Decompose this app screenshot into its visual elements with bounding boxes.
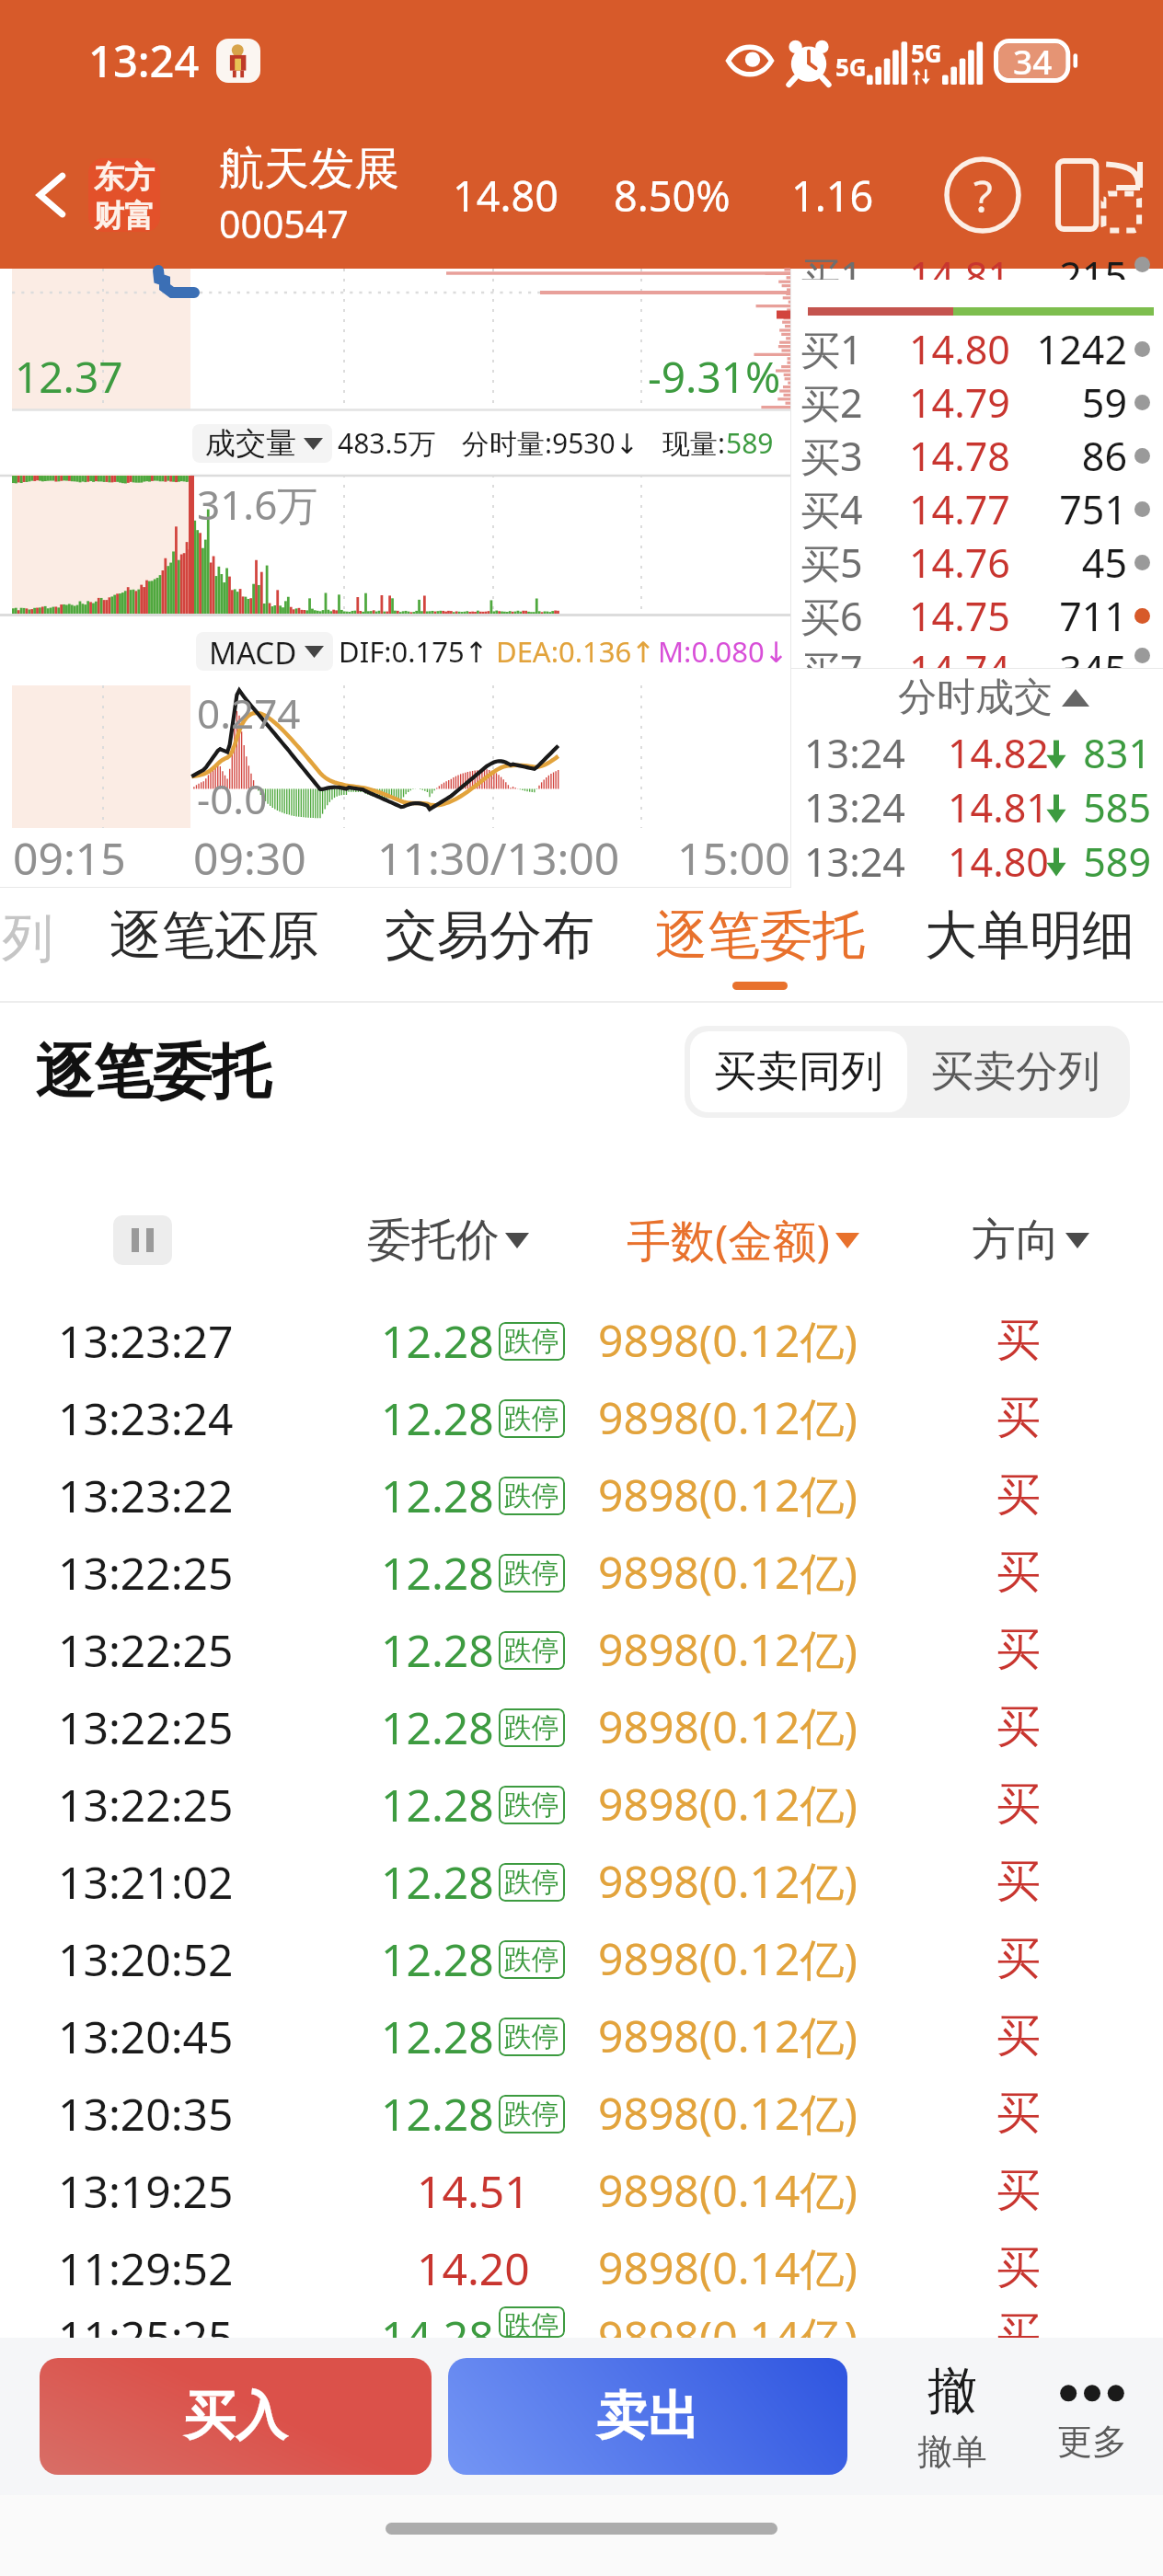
button[interactable]: 11:25:25 xyxy=(0,2306,1163,2338)
staticText: 14.78 xyxy=(909,429,1010,482)
button[interactable]: 买卖同列 xyxy=(690,1031,907,1112)
staticText: 45 xyxy=(1081,535,1127,589)
button[interactable]: 13:24 xyxy=(791,834,1163,888)
staticText: 11:25:25 xyxy=(58,2306,234,2338)
button[interactable]: 交易分布 xyxy=(385,888,594,1003)
staticText: 14.51 xyxy=(417,2161,530,2221)
button[interactable]: 手数(金额) xyxy=(627,1210,859,1271)
staticText: 5G xyxy=(911,37,942,69)
staticText: DIF:0.175↑ xyxy=(339,632,489,671)
button[interactable]: 分时成交 xyxy=(791,669,1163,726)
button[interactable]: 13:22:25 xyxy=(0,1688,1163,1765)
staticText: 9898(0.12亿) xyxy=(598,1465,858,1525)
button[interactable]: Back xyxy=(0,121,101,269)
staticText: 345 xyxy=(1059,642,1127,668)
button[interactable]: 逐笔还原 xyxy=(109,888,319,1003)
staticText: 买 xyxy=(996,2306,1041,2338)
staticText: 委托价 xyxy=(367,1213,500,1268)
staticText: 分时量:9530↓ xyxy=(462,424,639,462)
staticText: 9898(0.12亿) xyxy=(598,1387,858,1448)
staticText: 14.74 xyxy=(909,642,1010,668)
staticText: 14.77 xyxy=(909,482,1010,535)
staticText: 13:21:02 xyxy=(58,1852,234,1912)
staticText: 12.37 xyxy=(15,348,123,406)
staticText: 13:22:25 xyxy=(58,1620,234,1680)
staticText: 买6 xyxy=(800,589,863,642)
button[interactable]: 成交量 xyxy=(192,424,332,463)
staticText: 12.28 xyxy=(381,1620,494,1680)
staticText: 9898(0.12亿) xyxy=(598,1851,858,1912)
button[interactable]: 13:22:25 xyxy=(0,1611,1163,1688)
staticText: 711 xyxy=(1059,589,1127,642)
staticText: 9898(0.12亿) xyxy=(598,1774,858,1834)
staticText: 13:24 xyxy=(804,780,905,834)
button[interactable]: 买5 xyxy=(791,535,1163,589)
staticText: 买入 xyxy=(184,2384,287,2449)
staticText: 跌停 xyxy=(504,1942,559,1977)
button[interactable]: 委托价 xyxy=(367,1213,529,1268)
staticText: 09:15 xyxy=(13,828,126,888)
button[interactable]: 13:20:35 xyxy=(0,2075,1163,2152)
button[interactable]: 13:20:52 xyxy=(0,1920,1163,1997)
button[interactable]: 买4 xyxy=(791,482,1163,535)
button[interactable]: 方向 xyxy=(972,1213,1089,1268)
staticText: 13:19:25 xyxy=(58,2161,234,2221)
staticText: 9898(0.12亿) xyxy=(598,1619,858,1680)
staticText: 买 xyxy=(996,2163,1041,2218)
button[interactable]: 买2 xyxy=(791,375,1163,429)
button[interactable]: 逐笔委托 xyxy=(655,888,865,1003)
staticText: -0.0 xyxy=(197,771,268,826)
staticText: 财富 xyxy=(94,197,155,232)
staticText: 买 xyxy=(996,1854,1041,1909)
staticText: 0.274 xyxy=(197,685,301,741)
staticText: 列 xyxy=(2,906,53,972)
staticText: 14.20 xyxy=(417,2238,530,2298)
staticText: 13:20:52 xyxy=(58,1929,234,1989)
staticText: 483.5万 xyxy=(338,424,436,462)
staticText: 14.82 xyxy=(948,726,1049,780)
button[interactable]: 买入 xyxy=(40,2358,432,2475)
staticText: 751 xyxy=(1059,482,1127,535)
staticText: 9898(0.12亿) xyxy=(598,1696,858,1757)
staticText: 买1 xyxy=(800,322,863,375)
button[interactable]: Pause xyxy=(113,1215,172,1265)
staticText: 跌停 xyxy=(504,2308,559,2336)
staticText: 9898(0.12亿) xyxy=(598,1542,858,1603)
button[interactable]: 买6 xyxy=(791,589,1163,642)
button[interactable]: 13:19:25 xyxy=(0,2152,1163,2229)
staticText: 买1 xyxy=(800,248,863,280)
button[interactable]: 13:23:24 xyxy=(0,1379,1163,1456)
button[interactable]: Help xyxy=(929,131,1036,259)
staticText: 买卖同列 xyxy=(714,1045,883,1098)
staticText: 9898(0.14亿) xyxy=(598,2160,858,2221)
button[interactable]: 11:29:52 xyxy=(0,2229,1163,2306)
staticText: 买 xyxy=(996,1777,1041,1832)
button[interactable]: 撤 xyxy=(888,2338,1017,2495)
button[interactable]: 13:22:25 xyxy=(0,1765,1163,1843)
button[interactable]: 13:23:22 xyxy=(0,1456,1163,1534)
button[interactable]: 13:22:25 xyxy=(0,1534,1163,1611)
button[interactable]: 13:24 xyxy=(791,726,1163,780)
button[interactable]: 13:23:27 xyxy=(0,1302,1163,1379)
staticText: 9898(0.12亿) xyxy=(598,1310,858,1371)
staticText: 15:00 xyxy=(677,828,790,888)
staticText: 14.80 xyxy=(948,834,1049,888)
button[interactable]: 13:24 xyxy=(791,780,1163,834)
staticText: 8.50% xyxy=(614,167,731,224)
button[interactable]: 买1 xyxy=(791,322,1163,375)
button[interactable]: Fullscreen xyxy=(1043,131,1152,259)
staticText: 逐笔还原 xyxy=(109,903,319,969)
staticText: 逐笔委托 xyxy=(655,903,865,969)
staticText: 14.28 xyxy=(381,2306,494,2338)
button[interactable]: More xyxy=(1028,2338,1157,2495)
button[interactable]: 13:20:45 xyxy=(0,1997,1163,2075)
button[interactable]: 卖出 xyxy=(448,2358,847,2475)
button[interactable]: 买3 xyxy=(791,429,1163,482)
staticText: 买5 xyxy=(800,535,863,589)
button[interactable]: 大单明细 xyxy=(925,888,1134,1003)
staticText: 14.81 xyxy=(948,780,1049,834)
button[interactable]: 买卖分列 xyxy=(907,1031,1124,1112)
button[interactable]: MACD xyxy=(196,632,333,671)
staticText: 东方 xyxy=(94,158,155,197)
button[interactable]: 13:21:02 xyxy=(0,1843,1163,1920)
